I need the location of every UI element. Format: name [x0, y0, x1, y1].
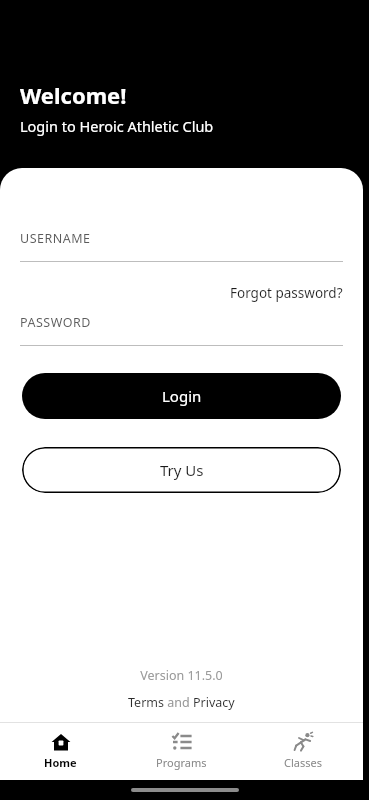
staticText: Try Us [160, 460, 204, 480]
staticText: Programs [156, 755, 207, 770]
button[interactable]: Forgot password? [230, 282, 343, 304]
staticText: Privacy [193, 694, 235, 711]
button[interactable]: Privacy [193, 694, 235, 711]
button[interactable]: Home [0, 723, 121, 780]
button[interactable]: Login [22, 373, 341, 419]
staticText: Welcome! [20, 80, 127, 110]
button[interactable]: Terms [128, 694, 164, 711]
staticText: USERNAME [20, 230, 91, 247]
staticText: Login [162, 386, 202, 406]
staticText: Forgot password? [230, 284, 343, 302]
staticText: Version 11.5.0 [0, 667, 363, 684]
staticText: Login to Heroic Athletic Club [20, 116, 214, 136]
button[interactable]: Programs [121, 723, 242, 780]
staticText: Home [44, 755, 77, 770]
button[interactable]: Classes [242, 723, 363, 780]
staticText: PASSWORD [20, 314, 91, 331]
button[interactable]: Try Us [22, 447, 341, 493]
staticText: Classes [284, 755, 322, 770]
button[interactable]: PASSWORD [20, 314, 343, 346]
button[interactable]: USERNAME [20, 230, 343, 262]
staticText: Terms [128, 694, 164, 711]
staticText: and [164, 694, 193, 711]
